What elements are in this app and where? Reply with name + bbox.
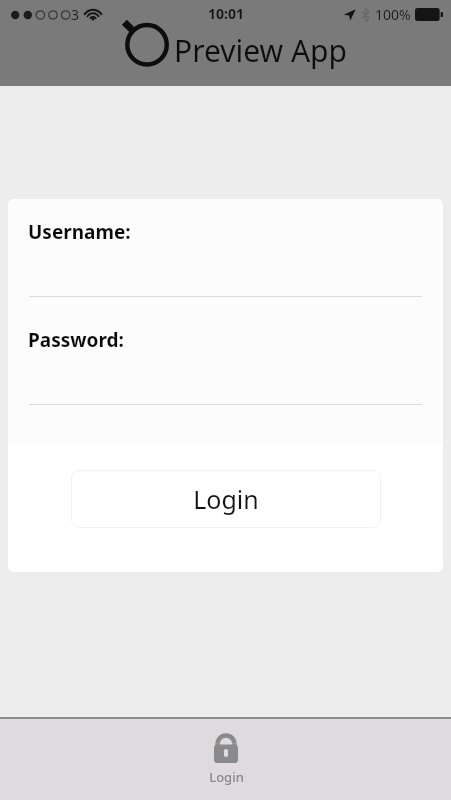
staticText: Login: [209, 768, 244, 786]
button[interactable]: Login: [71, 470, 381, 528]
staticText: 3: [71, 5, 80, 24]
button[interactable]: Login: [171, 731, 281, 786]
staticText: 10:01: [208, 4, 244, 23]
staticText: Login: [193, 482, 259, 516]
staticText: Preview App: [174, 30, 348, 71]
staticText: Username:: [28, 219, 131, 245]
staticText: Password:: [28, 327, 124, 353]
other: Login: [211, 731, 241, 763]
staticText: 100%: [375, 5, 411, 24]
